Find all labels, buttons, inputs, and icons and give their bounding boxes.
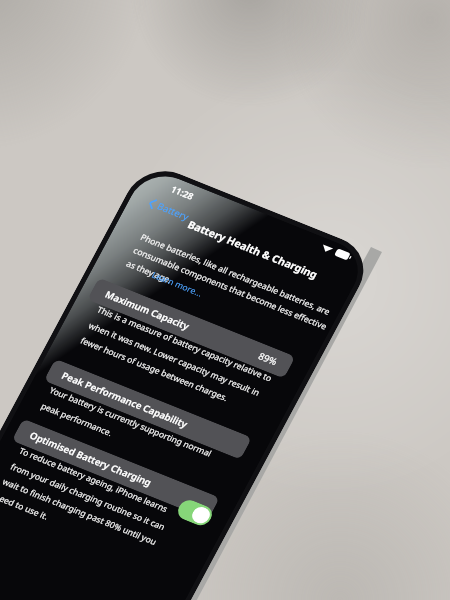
- button[interactable]: Battery: [143, 186, 194, 234]
- staticText: Battery: [152, 191, 195, 232]
- button[interactable]: Peak Performance Capability: [38, 305, 258, 514]
- staticText: Phone batteries, like all rechargeable b…: [114, 178, 346, 399]
- staticText: Maximum Capacity: [100, 265, 195, 355]
- button[interactable]: Optimised Battery Charging toggle: [169, 488, 220, 537]
- staticText: Battery Health & Charging: [182, 182, 324, 317]
- staticText: Peak Performance Capability: [56, 335, 193, 465]
- staticText: 89%: [253, 345, 283, 373]
- staticText: Optimised Battery Charging: [24, 396, 157, 522]
- staticText: Your battery is currently supporting nor…: [33, 339, 226, 523]
- button[interactable]: Maximum Capacity: [81, 224, 301, 432]
- button[interactable]: Optimised Battery Charging: [6, 365, 226, 573]
- staticText: 11:28: [166, 176, 200, 208]
- button[interactable]: Learn more...: [147, 255, 208, 314]
- staticText: This is a measure of battery capacity re…: [68, 255, 289, 465]
- staticText: To reduce battery ageing, iPhone learns …: [0, 399, 204, 600]
